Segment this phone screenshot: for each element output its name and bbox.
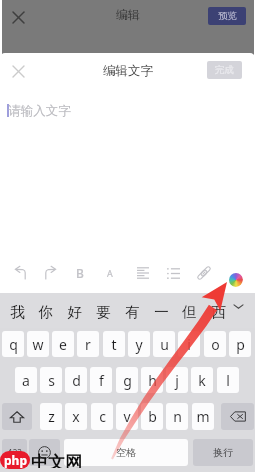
staticText: r	[85, 335, 91, 354]
button[interactable]: j	[166, 367, 188, 393]
staticText: w	[32, 335, 44, 354]
button[interactable]: 有	[119, 297, 145, 327]
button[interactable]: Expand candidates	[230, 298, 247, 315]
staticText: 西	[211, 303, 226, 321]
staticText: 换行	[213, 446, 233, 459]
staticText: p	[236, 335, 245, 354]
button[interactable]: w	[27, 331, 49, 357]
staticText: x	[72, 407, 80, 426]
button[interactable]: f	[90, 367, 112, 393]
button[interactable]: g	[116, 367, 138, 393]
staticText: a	[22, 371, 30, 390]
button[interactable]: List	[165, 265, 181, 281]
button[interactable]: Undo	[13, 265, 29, 281]
staticText: m	[196, 407, 210, 426]
staticText: g	[123, 371, 132, 390]
button[interactable]: e	[52, 331, 74, 357]
staticText: l	[226, 371, 230, 390]
staticText: y	[135, 335, 143, 354]
staticText: A	[107, 267, 113, 279]
staticText: 123	[8, 447, 22, 458]
staticText: 请输入文字	[8, 103, 71, 119]
staticText: b	[148, 407, 157, 426]
staticText: 你	[38, 303, 53, 321]
button[interactable]: h	[141, 367, 163, 393]
staticText: k	[198, 371, 206, 390]
button[interactable]: i	[178, 331, 200, 357]
button[interactable]: v	[116, 403, 138, 430]
staticText: 我	[10, 303, 25, 321]
button[interactable]: 完成	[207, 61, 242, 79]
staticText: s	[48, 371, 55, 390]
button[interactable]: 要	[90, 297, 116, 327]
staticText: n	[173, 407, 182, 426]
button[interactable]: k	[191, 367, 213, 393]
button[interactable]: Close	[6, 5, 30, 29]
staticText: 完成	[215, 64, 234, 76]
staticText: c	[99, 407, 106, 426]
button[interactable]: Redo	[42, 265, 58, 281]
button[interactable]: u	[153, 331, 175, 357]
button[interactable]: 一	[148, 297, 174, 327]
button[interactable]: Emoji	[29, 439, 60, 466]
button[interactable]: 我	[4, 297, 30, 327]
button[interactable]: n	[166, 403, 188, 430]
staticText: t	[111, 335, 117, 354]
button[interactable]: x	[65, 403, 87, 430]
staticText: 但	[182, 303, 197, 321]
button[interactable]: t	[103, 331, 125, 357]
staticText: 空格	[116, 446, 136, 459]
button[interactable]: z	[40, 403, 62, 430]
staticText: 一	[154, 303, 169, 321]
button[interactable]: a	[15, 367, 37, 393]
button[interactable]: Numbers	[2, 439, 27, 466]
button[interactable]: b	[141, 403, 163, 430]
staticText: 编辑文字	[103, 63, 153, 79]
staticText: 有	[125, 303, 140, 321]
staticText: 好	[67, 303, 82, 321]
button[interactable]: 但	[176, 297, 202, 327]
button[interactable]: p	[229, 331, 251, 357]
button[interactable]: Text colour	[228, 272, 243, 287]
staticText: v	[123, 407, 131, 426]
staticText: 中文网	[31, 452, 82, 468]
button[interactable]: New line	[193, 439, 253, 466]
button[interactable]: 你	[32, 297, 58, 327]
staticText: 预览	[218, 10, 237, 22]
button[interactable]: o	[204, 331, 226, 357]
button[interactable]: c	[91, 403, 113, 430]
staticText: e	[59, 335, 67, 354]
button[interactable]: Bold	[72, 265, 88, 281]
staticText: q	[9, 335, 18, 354]
staticText: j	[175, 371, 179, 390]
button[interactable]: 空格	[64, 439, 188, 466]
staticText: u	[160, 335, 169, 354]
staticText: f	[99, 371, 104, 390]
staticText: h	[148, 371, 157, 390]
button[interactable]: 西	[205, 297, 231, 327]
staticText: d	[72, 371, 81, 390]
button[interactable]: l	[217, 367, 239, 393]
staticText: B	[76, 265, 84, 281]
button[interactable]: y	[128, 331, 150, 357]
button[interactable]: Close editor	[6, 59, 30, 83]
button[interactable]: Link	[196, 265, 212, 281]
staticText: 编辑	[116, 7, 140, 22]
button[interactable]: d	[65, 367, 87, 393]
staticText: php	[4, 452, 27, 468]
button[interactable]: 预览	[208, 7, 246, 25]
button[interactable]: 好	[61, 297, 87, 327]
staticText: z	[48, 407, 55, 426]
button[interactable]: Align	[135, 265, 151, 281]
staticText: 要	[96, 303, 111, 321]
button[interactable]: q	[2, 331, 24, 357]
button[interactable]: s	[40, 367, 62, 393]
button[interactable]: r	[77, 331, 99, 357]
button[interactable]: Shift	[2, 403, 32, 430]
button[interactable]: m	[192, 403, 214, 430]
staticText: i	[187, 335, 191, 354]
button[interactable]: Backspace	[221, 403, 254, 430]
button[interactable]: Font size	[102, 265, 118, 281]
staticText: o	[211, 335, 220, 354]
